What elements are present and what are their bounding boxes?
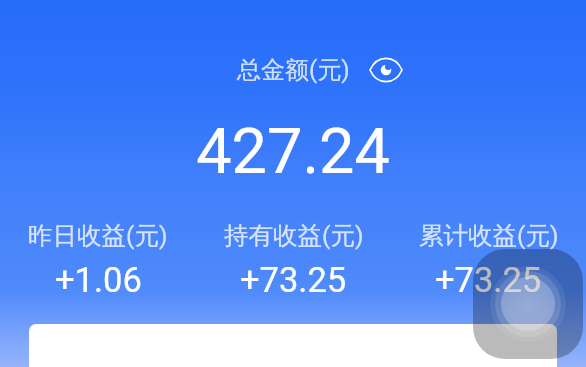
button[interactable]: 累计收益(元) [391,220,586,300]
staticText: 持有收益(元) [224,220,364,251]
staticText: 累计收益(元) [419,220,559,251]
button[interactable]: 总金额(元) [237,55,350,85]
button[interactable] [29,324,557,367]
button[interactable]: 427.24 [0,115,586,189]
button[interactable]: 昨日收益(元) [0,220,196,300]
staticText: +73.25 [435,260,542,300]
button[interactable]: Assistive touch [473,249,583,359]
button[interactable]: 持有收益(元) [196,220,391,300]
button[interactable]: Toggle balance visibility [369,53,403,87]
staticText: 昨日收益(元) [28,220,168,251]
staticText: +73.25 [240,260,347,300]
staticText: +1.06 [55,260,142,300]
